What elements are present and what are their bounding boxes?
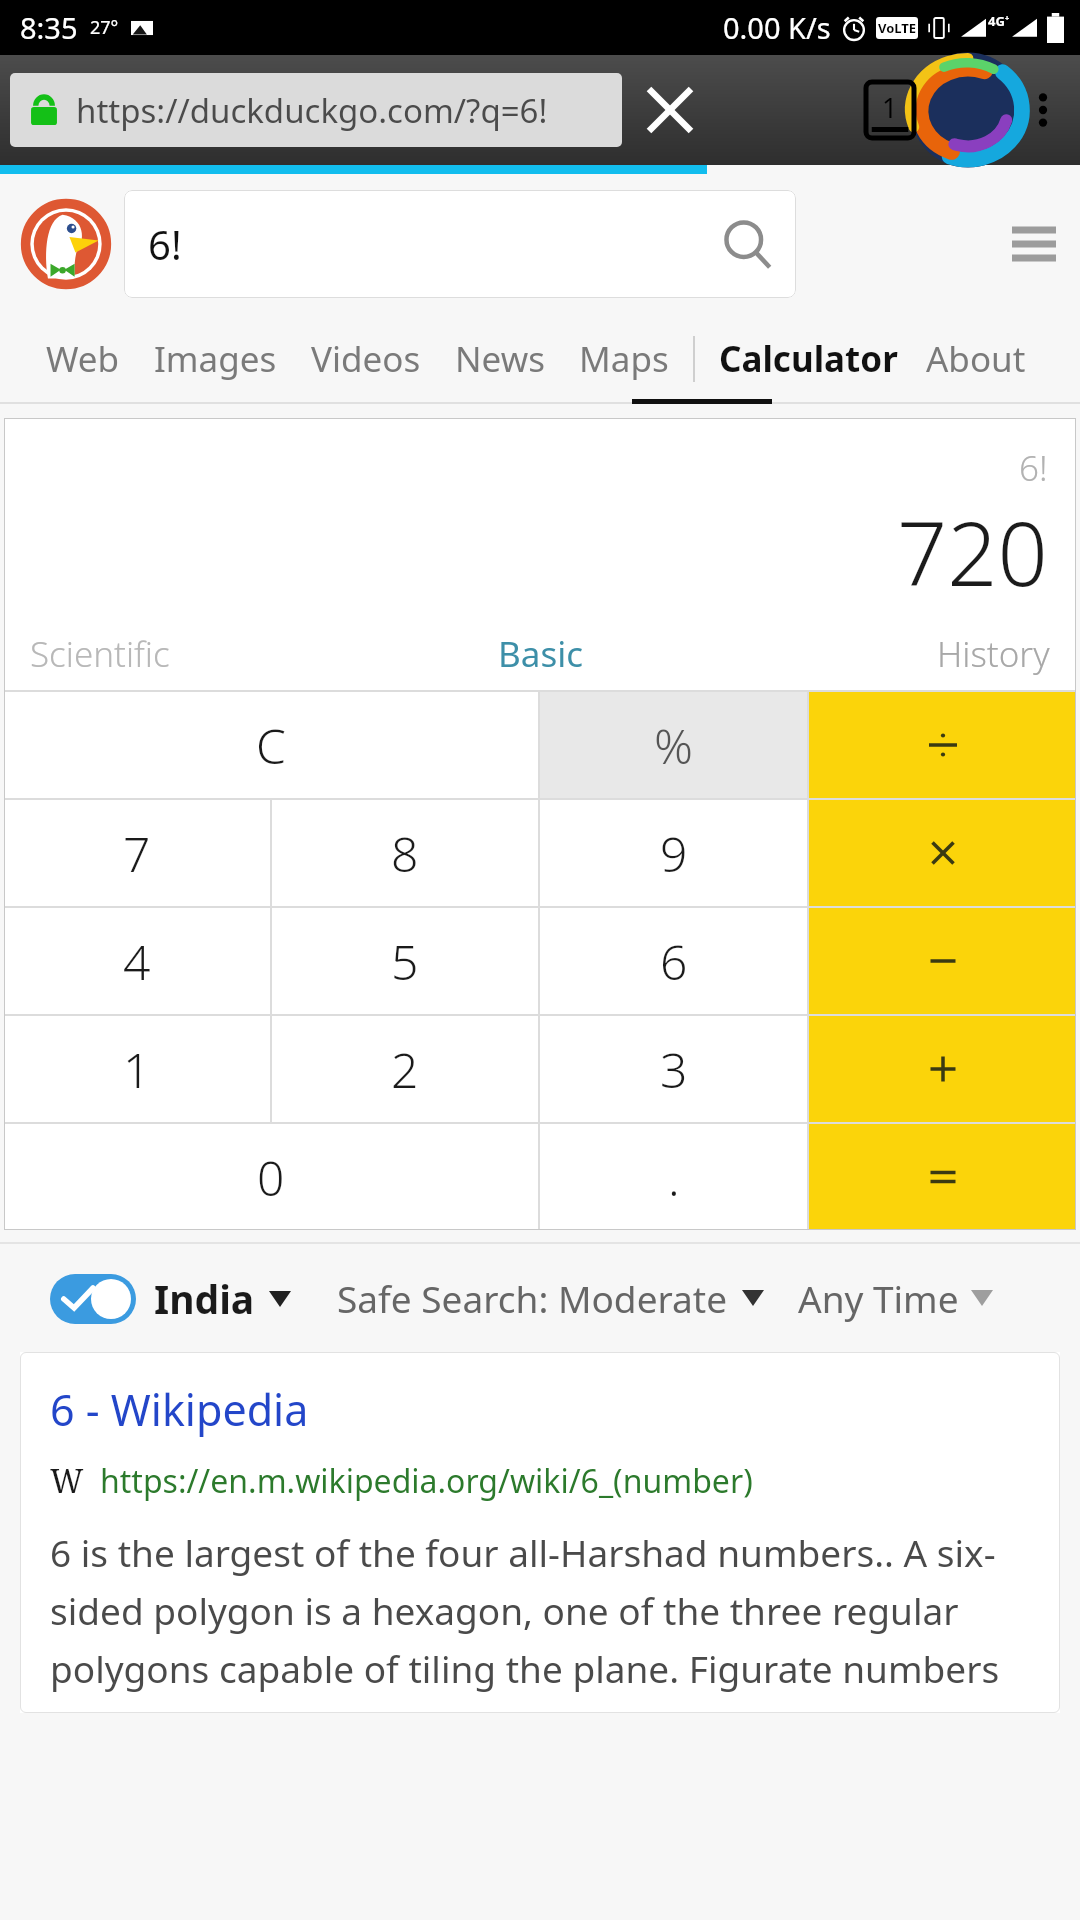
staticText: Calculator: [719, 335, 898, 383]
staticText: https://duckduckgo.com/?q=6!: [76, 88, 548, 133]
button[interactable]: Tabs: [848, 68, 932, 152]
staticText: 7: [123, 821, 151, 886]
button[interactable]: Videos: [311, 314, 421, 404]
button[interactable]: News: [455, 314, 545, 404]
staticText: Images: [154, 335, 277, 383]
button[interactable]: 6 - Wikipedia: [20, 1352, 1060, 1713]
button[interactable]: Equals: [809, 1124, 1076, 1230]
staticText: VoLTE: [878, 19, 917, 37]
button[interactable]: Calculator: [719, 314, 898, 404]
staticText: News: [455, 335, 545, 383]
button[interactable]: Divide: [809, 692, 1076, 798]
staticText: 27°: [90, 15, 119, 40]
staticText: W: [50, 1459, 84, 1503]
staticText: 8: [391, 821, 419, 886]
staticText: 6: [660, 929, 688, 994]
button[interactable]: Scientific: [4, 618, 362, 690]
button[interactable]: Menu: [988, 198, 1080, 290]
staticText: 6 is the largest of the four all-Harshad…: [50, 1527, 1036, 1693]
staticText: 2: [391, 1037, 419, 1102]
button[interactable]: 3: [540, 1016, 807, 1122]
staticText: 6 - Wikipedia: [50, 1380, 309, 1439]
staticText: 0.00 K/s: [723, 8, 831, 47]
staticText: Maps: [579, 335, 669, 383]
button[interactable]: https://duckduckgo.com/?q=6!: [10, 73, 622, 147]
staticText: 6!: [1019, 444, 1048, 492]
button[interactable]: 6: [540, 908, 807, 1014]
staticText: Scientific: [30, 630, 170, 678]
button[interactable]: 9: [540, 800, 807, 906]
button[interactable]: India: [50, 1272, 291, 1325]
button[interactable]: Web: [46, 314, 120, 404]
button[interactable]: More options: [1006, 73, 1080, 147]
button[interactable]: Maps: [579, 314, 669, 404]
button[interactable]: Images: [154, 314, 277, 404]
button[interactable]: Basic: [362, 618, 719, 690]
staticText: Videos: [311, 335, 421, 383]
button[interactable]: Plus: [809, 1016, 1076, 1122]
staticText: 3: [660, 1037, 688, 1102]
staticText: Safe Search: Moderate: [337, 1273, 728, 1323]
button[interactable]: Stop loading: [628, 68, 712, 152]
button[interactable]: History: [719, 618, 1076, 690]
staticText: 0: [257, 1145, 285, 1210]
staticText: .: [668, 1145, 680, 1210]
staticText: Web: [46, 335, 120, 383]
button[interactable]: .: [540, 1124, 807, 1230]
staticText: History: [937, 630, 1050, 678]
staticText: 5: [391, 929, 419, 994]
staticText: 4: [123, 929, 151, 994]
button[interactable]: About: [926, 314, 1026, 404]
button[interactable]: Minus: [809, 908, 1076, 1014]
staticText: C: [256, 713, 286, 778]
button[interactable]: 5: [272, 908, 538, 1014]
button[interactable]: 0: [4, 1124, 538, 1230]
staticText: India: [154, 1272, 255, 1325]
staticText: 8:35: [20, 8, 78, 47]
button[interactable]: DuckDuckGo home: [23, 201, 109, 287]
staticText: https://en.m.wikipedia.org/wiki/6_(numbe…: [100, 1459, 753, 1503]
button[interactable]: Any Time: [798, 1273, 993, 1323]
staticText: 1: [882, 89, 898, 126]
staticText: 4G⁺: [988, 12, 1010, 30]
staticText: %: [654, 713, 693, 778]
staticText: About: [926, 335, 1026, 383]
staticText: Any Time: [798, 1273, 959, 1323]
button[interactable]: 1: [4, 1016, 270, 1122]
button[interactable]: %: [540, 692, 807, 798]
button[interactable]: Safe Search: Moderate: [337, 1273, 764, 1323]
staticText: 9: [660, 821, 688, 886]
button[interactable]: 2: [272, 1016, 538, 1122]
staticText: 6!: [148, 217, 720, 271]
button[interactable]: 6!: [124, 190, 796, 298]
staticText: 1: [123, 1037, 151, 1102]
button[interactable]: C: [4, 692, 538, 798]
button[interactable]: 8: [272, 800, 538, 906]
staticText: Basic: [498, 630, 583, 678]
button[interactable]: Multiply: [809, 800, 1076, 906]
button[interactable]: 7: [4, 800, 270, 906]
staticText: 720: [897, 492, 1048, 612]
button[interactable]: 4: [4, 908, 270, 1014]
